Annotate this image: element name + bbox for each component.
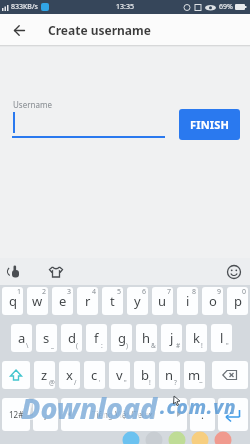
button[interactable]: r	[77, 287, 98, 315]
button[interactable]: f	[86, 324, 107, 352]
staticText: ,	[44, 407, 47, 422]
staticText: _	[51, 341, 54, 350]
button[interactable]: i	[177, 287, 198, 315]
staticText: /	[74, 378, 77, 387]
button[interactable]	[218, 398, 248, 431]
staticText: 5	[117, 287, 122, 297]
staticText: r	[85, 292, 91, 310]
staticText: l	[220, 329, 224, 347]
staticText: k	[193, 329, 200, 347]
staticText: .com.vn	[160, 394, 237, 420]
button[interactable]: j	[161, 324, 182, 352]
button[interactable]: z	[34, 361, 55, 389]
button[interactable]: b	[134, 361, 155, 389]
staticText: 13:35	[116, 2, 134, 12]
staticText: 1	[17, 287, 22, 297]
button[interactable]	[226, 264, 242, 280]
staticText: f	[94, 329, 99, 347]
staticText: Download	[23, 390, 160, 429]
button[interactable]: k	[186, 324, 207, 352]
staticText: ?	[174, 378, 177, 387]
staticText: c	[91, 366, 98, 384]
staticText: 9	[217, 287, 222, 297]
staticText: )	[126, 341, 128, 350]
button[interactable]: l	[211, 324, 232, 352]
staticText: 833KB/s	[11, 2, 38, 12]
staticText: 69%	[219, 2, 233, 12]
button[interactable]: FINISH	[179, 109, 240, 140]
staticText: "	[226, 341, 229, 350]
staticText: x	[66, 366, 73, 384]
button[interactable]: v	[109, 361, 130, 389]
button[interactable]: g	[111, 324, 132, 352]
staticText: q	[9, 292, 17, 310]
staticText: v	[116, 366, 123, 384]
button[interactable]: p	[227, 287, 248, 315]
staticText: n	[165, 366, 174, 384]
staticText: !	[201, 341, 203, 350]
staticText: b	[141, 366, 149, 384]
button[interactable]: 12#	[2, 398, 30, 431]
staticText: !	[149, 378, 151, 387]
button[interactable]	[212, 361, 248, 389]
button[interactable]: a	[11, 324, 32, 352]
staticText: .com.vn	[162, 395, 239, 421]
button[interactable]: t	[102, 287, 123, 315]
button[interactable]: q	[2, 287, 23, 315]
staticText: :	[101, 341, 103, 350]
staticText: 8	[192, 287, 197, 297]
staticText: g	[118, 329, 126, 347]
staticText: 0	[242, 287, 247, 297]
button[interactable]: o	[202, 287, 223, 315]
staticText: \	[26, 341, 29, 350]
button[interactable]	[6, 264, 22, 280]
staticText: w	[32, 292, 43, 310]
button[interactable]: d	[61, 324, 82, 352]
staticText: o	[209, 292, 217, 310]
button[interactable]: Tiếng Việt (Telex)	[61, 398, 187, 431]
staticText: y	[134, 292, 141, 310]
staticText: 6	[142, 287, 147, 297]
button[interactable]: s	[36, 324, 57, 352]
button[interactable]: m	[184, 361, 205, 389]
staticText: Tiếng Việt (Telex)	[92, 409, 156, 420]
button[interactable]: y	[127, 287, 148, 315]
button[interactable]	[10, 21, 28, 39]
staticText: j	[170, 329, 174, 347]
staticText: (	[76, 341, 78, 350]
staticText: u	[158, 292, 167, 310]
button[interactable]: c	[84, 361, 105, 389]
staticText: d	[68, 329, 76, 347]
staticText: Download	[21, 389, 158, 428]
staticText: FINISH	[190, 117, 230, 132]
staticText: Username	[13, 99, 52, 110]
staticText: 7	[167, 287, 172, 297]
staticText: "	[124, 378, 127, 387]
staticText: h	[142, 329, 151, 347]
staticText: s	[43, 329, 50, 347]
staticText: p	[234, 292, 242, 310]
staticText: @	[49, 378, 55, 387]
button[interactable]	[48, 264, 64, 280]
staticText: e	[59, 292, 67, 310]
staticText: 2	[42, 287, 47, 297]
button[interactable]: n	[159, 361, 180, 389]
button[interactable]: x	[59, 361, 80, 389]
button[interactable]	[2, 361, 30, 389]
button[interactable]: u	[152, 287, 173, 315]
staticText: 12#	[9, 409, 24, 420]
staticText: '	[99, 378, 101, 387]
button[interactable]: .	[190, 398, 215, 431]
button[interactable]: h	[136, 324, 157, 352]
staticText: a	[18, 329, 26, 347]
staticText: m	[188, 366, 201, 384]
button[interactable]: w	[27, 287, 48, 315]
button[interactable]: ,	[33, 398, 58, 431]
staticText: 3	[67, 287, 72, 297]
staticText: t	[110, 292, 115, 310]
button[interactable]: e	[52, 287, 73, 315]
staticText: z	[41, 366, 48, 384]
staticText: ~	[199, 378, 203, 387]
staticText: #	[176, 341, 181, 350]
staticText: &	[151, 341, 156, 350]
